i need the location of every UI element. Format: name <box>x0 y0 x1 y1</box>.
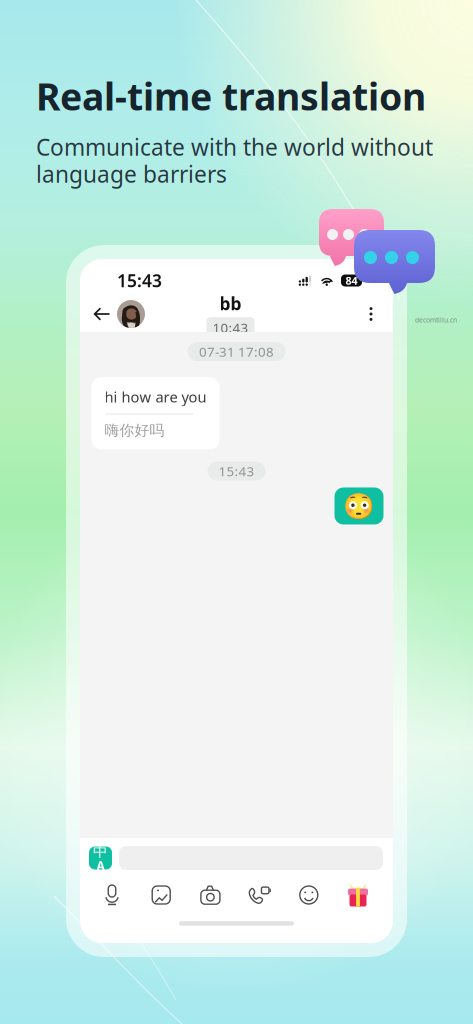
staticText: 15:43 <box>218 462 254 480</box>
staticText: language barriers <box>36 159 227 189</box>
staticText: bb <box>219 292 241 315</box>
staticText: 嗨你好吗 <box>104 421 164 439</box>
staticText: Communicate with the world without <box>36 132 433 162</box>
button[interactable]: Back <box>91 298 113 330</box>
staticText: 😳 <box>343 491 375 520</box>
staticText: 84 <box>345 273 357 288</box>
staticText: decomtillu.cn <box>415 316 457 324</box>
button[interactable]: Translate <box>89 846 112 869</box>
button[interactable]: Stickers <box>292 880 326 910</box>
staticText: Real-time translation <box>36 71 426 121</box>
staticText: 中 <box>93 842 108 860</box>
button[interactable]: More options <box>360 298 382 330</box>
button[interactable]: Voice message <box>95 880 129 910</box>
staticText: hi how are you <box>104 387 206 406</box>
button[interactable]: Photos <box>144 880 178 910</box>
staticText: 07-31 17:08 <box>199 343 274 360</box>
staticText: 10:43 <box>212 319 248 336</box>
button[interactable]: Camera <box>193 880 227 910</box>
button[interactable]: Profile photo <box>117 300 145 328</box>
staticText: A <box>96 857 104 873</box>
button[interactable]: Video call <box>243 880 277 910</box>
button[interactable]: Send gift <box>341 880 375 910</box>
staticText: 15:43 <box>117 269 162 292</box>
